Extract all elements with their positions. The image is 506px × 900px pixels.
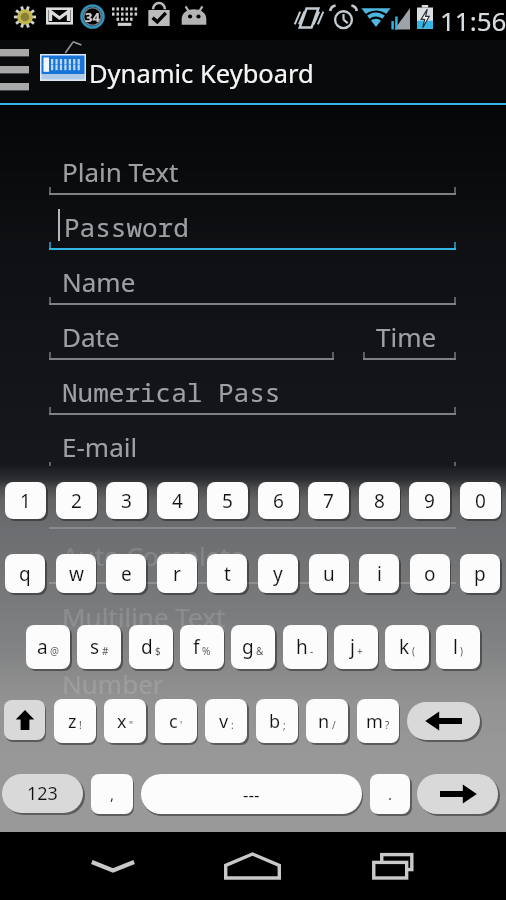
button[interactable]: p [460, 554, 500, 593]
button[interactable]: Password [0, 195, 506, 250]
button[interactable]: Hide keyboard [55, 832, 171, 900]
button[interactable]: Name [0, 250, 506, 305]
staticText: % [202, 644, 211, 658]
staticText: ? [385, 718, 390, 732]
staticText: n [318, 709, 330, 734]
button[interactable]: Menu [0, 49, 29, 91]
staticText: f [193, 634, 200, 660]
button[interactable]: 9 [409, 482, 450, 519]
button[interactable]: . [370, 774, 410, 814]
button[interactable]: j [334, 625, 378, 669]
staticText: w [69, 561, 84, 587]
button[interactable]: Numerical Pass [0, 360, 506, 415]
button[interactable]: , [91, 774, 133, 814]
button[interactable]: 3 [106, 482, 147, 519]
staticText: Phone [62, 704, 141, 739]
staticText: s [90, 634, 100, 660]
button[interactable]: z [54, 699, 96, 743]
button[interactable]: q [5, 554, 45, 593]
staticText: . [388, 784, 393, 804]
staticText: Web Address [62, 484, 222, 519]
staticText: z [68, 709, 77, 734]
button[interactable]: Backspace [407, 702, 480, 740]
button[interactable]: t [207, 554, 247, 593]
staticText: 123 [27, 781, 58, 806]
staticText: " [129, 718, 134, 732]
button[interactable]: Multiline Text [0, 580, 506, 635]
button[interactable]: Recents [335, 832, 451, 900]
button[interactable]: E-mail [0, 415, 506, 470]
button[interactable]: 4 [157, 482, 198, 519]
button[interactable]: g [231, 625, 275, 669]
staticText: Multiline Text [62, 599, 226, 634]
staticText: E-mail [62, 429, 138, 464]
button[interactable]: e [106, 554, 146, 593]
staticText: e [121, 561, 132, 587]
button[interactable]: l [436, 625, 480, 669]
button[interactable]: 7 [308, 482, 349, 519]
button[interactable]: Phone [0, 690, 506, 745]
button[interactable] [0, 40, 506, 103]
button[interactable]: --- [141, 774, 362, 814]
staticText: Time [376, 319, 437, 354]
staticText: 34 [85, 8, 100, 26]
staticText: Multiline Text [62, 594, 226, 629]
button[interactable]: 5 [207, 482, 248, 519]
staticText: ! [79, 718, 82, 732]
staticText: , [110, 784, 115, 804]
button[interactable]: Home [194, 832, 310, 900]
staticText: 7 [323, 488, 334, 514]
button[interactable]: i [359, 554, 399, 593]
button[interactable]: n [306, 699, 348, 743]
staticText: Number [62, 649, 164, 684]
staticText: a [37, 634, 48, 660]
button[interactable]: d [129, 625, 173, 669]
button[interactable]: v [205, 699, 247, 743]
button[interactable]: 123 [2, 774, 83, 813]
button[interactable]: Shift [4, 700, 45, 740]
staticText: 6 [273, 488, 284, 514]
button[interactable]: w [56, 554, 96, 593]
staticText: j [350, 634, 355, 660]
button[interactable]: f [180, 625, 224, 669]
staticText: 3 [121, 488, 132, 514]
staticText: 0 [475, 488, 486, 514]
button[interactable]: o [410, 554, 450, 593]
button[interactable]: Web Address [0, 470, 506, 525]
button[interactable]: 6 [258, 482, 299, 519]
staticText: ' [180, 718, 183, 732]
staticText: 9 [424, 488, 435, 514]
button[interactable]: 2 [56, 482, 97, 519]
button[interactable]: k [385, 625, 429, 669]
button[interactable]: Auto Complete [0, 525, 506, 580]
staticText: 5 [222, 488, 233, 514]
staticText: Numerical Pass [62, 374, 281, 409]
button[interactable]: 8 [359, 482, 400, 519]
button[interactable]: y [258, 554, 298, 593]
staticText: Name [62, 264, 136, 299]
button[interactable]: b [256, 699, 298, 743]
button[interactable]: Time [363, 305, 456, 360]
button[interactable]: Number [0, 635, 506, 690]
button[interactable]: s [77, 625, 121, 669]
button[interactable]: Plain Text [0, 140, 506, 195]
button[interactable]: r [157, 554, 197, 593]
button[interactable]: a [26, 625, 70, 669]
staticText: 8 [374, 488, 385, 514]
button[interactable]: Enter [417, 774, 498, 814]
button[interactable]: 0 [460, 482, 501, 519]
staticText: 4 [172, 488, 183, 514]
button[interactable]: u [309, 554, 349, 593]
button[interactable]: 1 [5, 482, 46, 519]
button[interactable]: Date [49, 305, 334, 360]
button[interactable]: c [155, 699, 197, 743]
staticText: 1 [20, 488, 31, 514]
button[interactable]: h [283, 625, 327, 669]
staticText: --- [243, 783, 260, 806]
staticText: Auto Complete [62, 538, 245, 573]
staticText: b [269, 709, 281, 734]
staticText: c [169, 709, 178, 734]
button[interactable]: x [104, 699, 146, 743]
staticText: h [296, 634, 308, 660]
button[interactable]: m [357, 699, 399, 743]
